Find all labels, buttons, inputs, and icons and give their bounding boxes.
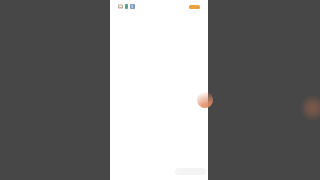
button[interactable]: Action [300, 95, 320, 121]
button[interactable]: Add [197, 92, 213, 108]
